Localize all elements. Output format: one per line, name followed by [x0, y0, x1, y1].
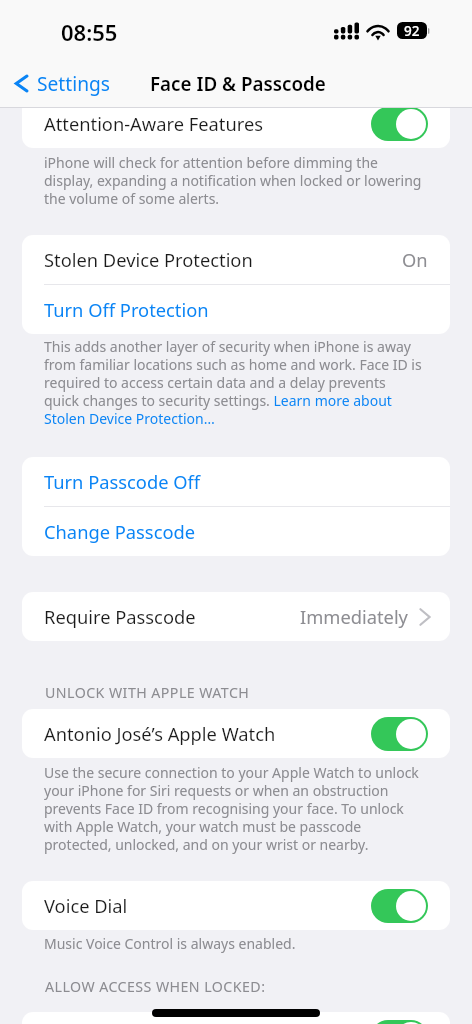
staticText: 92 [404, 22, 420, 39]
staticText: Stolen Device Protection [44, 247, 253, 272]
staticText: Settings [37, 70, 111, 96]
staticText: Use the secure connection to your Apple … [44, 763, 423, 854]
button[interactable]: Toggle switch [371, 717, 428, 751]
staticText: Change Passcode [44, 519, 196, 544]
staticText: ALLOW ACCESS WHEN LOCKED: [45, 977, 266, 996]
staticText: Turn Off Protection [44, 297, 209, 322]
button[interactable]: Settings [0, 67, 121, 99]
button[interactable]: Antonio José’s Apple Watch [22, 709, 450, 758]
staticText: Immediately [300, 604, 408, 629]
button[interactable]: Toggle switch [371, 889, 428, 923]
button[interactable]: Stolen Device Protection [22, 235, 450, 284]
staticText: Turn Passcode Off [44, 469, 201, 494]
staticText: Music Voice Control is always enabled. [44, 934, 423, 953]
button[interactable]: Today View [22, 1012, 450, 1024]
staticText: On [402, 247, 428, 272]
staticText: This adds another layer of security when… [44, 337, 423, 428]
button[interactable]: Change Passcode [22, 507, 450, 556]
staticText: 08:55 [61, 17, 118, 47]
staticText: Attention-Aware Features [44, 111, 263, 136]
staticText: iPhone will check for attention before d… [44, 153, 423, 208]
button[interactable]: Toggle switch [371, 107, 428, 141]
button[interactable]: Turn Off Protection [22, 285, 450, 334]
button[interactable]: Toggle switch [371, 1020, 428, 1024]
staticText: Antonio José’s Apple Watch [44, 721, 276, 746]
button[interactable]: Require Passcode [22, 592, 450, 641]
button[interactable]: Turn Passcode Off [22, 457, 450, 506]
staticText: Voice Dial [44, 893, 128, 918]
button[interactable]: Attention-Aware Features [22, 99, 450, 148]
staticText: UNLOCK WITH APPLE WATCH [45, 683, 250, 702]
staticText: Face ID & Passcode [150, 71, 326, 97]
staticText: Require Passcode [44, 604, 196, 629]
button[interactable]: Voice Dial [22, 881, 450, 930]
